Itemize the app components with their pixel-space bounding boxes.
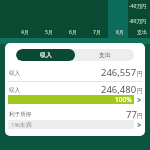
- button[interactable]: Show income details: [133, 94, 144, 105]
- button[interactable]: 100%: [8, 95, 134, 104]
- staticText: 収入: [9, 70, 21, 77]
- staticText: 1%未満: [11, 121, 32, 129]
- button[interactable]: Show interest income details: [133, 119, 144, 130]
- staticText: 77: [126, 108, 137, 121]
- button[interactable]: 収入: [16, 49, 75, 61]
- staticText: 収入: [40, 51, 52, 59]
- staticText: 支出: [137, 29, 147, 35]
- staticText: 7月: [93, 29, 101, 36]
- button[interactable]: 支出: [75, 49, 134, 61]
- staticText: 6月: [69, 29, 77, 36]
- staticText: 円: [137, 112, 143, 120]
- staticText: 円: [137, 70, 143, 78]
- staticText: 支出: [99, 51, 111, 59]
- staticText: 246,557: [101, 66, 137, 79]
- staticText: 利子所得: [9, 111, 32, 118]
- staticText: 5月: [45, 29, 53, 36]
- staticText: 100%: [115, 95, 132, 104]
- button[interactable]: 1%未満: [8, 120, 134, 129]
- staticText: 246,480: [101, 83, 137, 96]
- staticText: 8月: [116, 29, 124, 36]
- staticText: 円: [137, 87, 143, 95]
- staticText: -80万円: [129, 18, 147, 25]
- staticText: -40万円: [129, 3, 147, 10]
- staticText: 収入: [9, 87, 21, 94]
- staticText: 4月: [21, 29, 29, 36]
